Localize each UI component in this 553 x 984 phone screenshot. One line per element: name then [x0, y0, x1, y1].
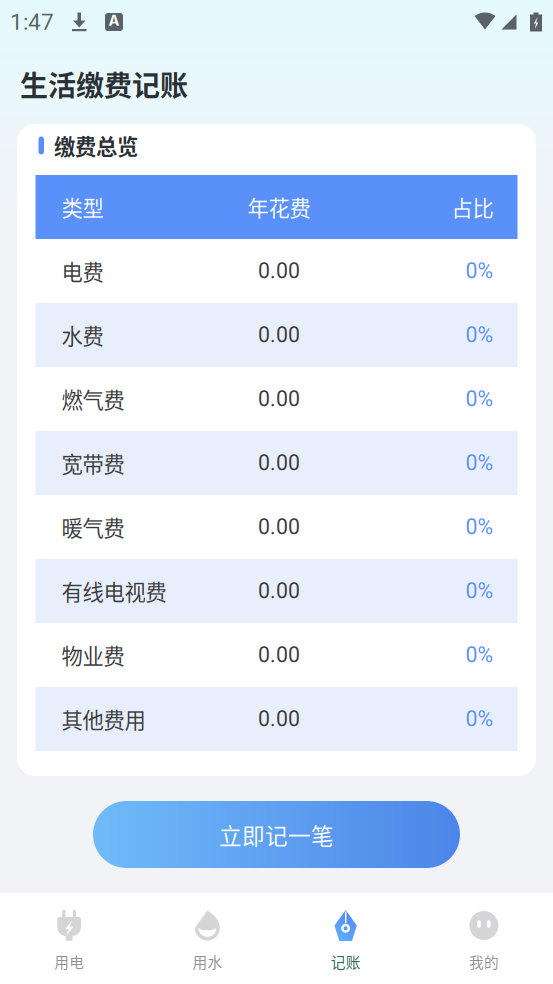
button[interactable]: 立即记一笔: [93, 801, 460, 868]
staticText: 0%: [465, 642, 493, 667]
staticText: 暖气费: [61, 512, 124, 542]
staticText: 0.00: [258, 642, 300, 667]
staticText: 电费: [61, 256, 103, 286]
staticText: 0%: [465, 258, 493, 283]
staticText: 占比: [451, 192, 493, 222]
staticText: 缴费总览: [54, 130, 138, 161]
staticText: 我的: [469, 951, 499, 972]
staticText: 燃气费: [61, 384, 124, 414]
staticText: 记账: [331, 951, 361, 972]
staticText: 有线电视费: [61, 576, 166, 606]
staticText: 0%: [465, 386, 493, 411]
staticText: 其他费用: [61, 704, 145, 734]
staticText: 生活缴费记账: [20, 64, 188, 104]
staticText: 0.00: [258, 322, 300, 347]
staticText: 类型: [61, 192, 103, 222]
staticText: 0%: [465, 706, 493, 731]
staticText: 0%: [465, 322, 493, 347]
staticText: 0.00: [258, 706, 300, 731]
staticText: 水费: [61, 320, 103, 350]
button[interactable]: 记账: [276, 893, 415, 984]
staticText: 0.00: [258, 578, 300, 603]
staticText: 0%: [465, 578, 493, 603]
staticText: A: [108, 12, 119, 29]
staticText: 0%: [465, 514, 493, 539]
staticText: 用水: [192, 951, 222, 972]
staticText: 物业费: [61, 640, 124, 670]
staticText: 0.00: [258, 386, 300, 411]
button[interactable]: 用电: [0, 893, 138, 984]
staticText: 宽带费: [61, 448, 124, 478]
staticText: 1:47: [10, 9, 54, 35]
staticText: 用电: [54, 951, 84, 972]
staticText: 0.00: [258, 258, 300, 283]
staticText: 立即记一笔: [219, 818, 334, 851]
button[interactable]: 我的: [415, 893, 553, 984]
button[interactable]: 用水: [138, 893, 276, 984]
staticText: 年花费: [247, 192, 310, 222]
staticText: 0%: [465, 450, 493, 475]
staticText: 0.00: [258, 514, 300, 539]
staticText: 0.00: [258, 450, 300, 475]
